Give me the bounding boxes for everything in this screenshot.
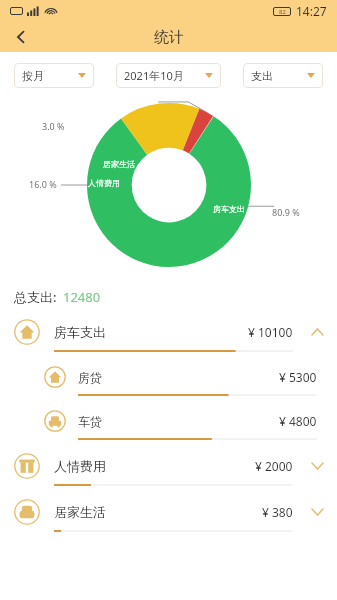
other: Expand (307, 502, 327, 522)
button[interactable]: 居家生活 (0, 494, 337, 540)
staticText: 按月 (22, 69, 44, 83)
staticText: ¥ 5300 (279, 369, 317, 385)
staticText: 车贷 (78, 414, 102, 429)
staticText: ¥ 2000 (255, 458, 293, 474)
button[interactable]: 房车支出 (0, 314, 337, 360)
staticText: 人情费用 (88, 178, 120, 188)
staticText: 居家生活 (103, 159, 135, 169)
staticText: 统计 (154, 28, 184, 47)
other: Collapse (307, 322, 327, 342)
staticText: 人情费用 (54, 458, 106, 474)
staticText: 3.0 % (42, 120, 65, 132)
staticText: 16.0 % (29, 178, 57, 190)
button[interactable]: 2021年10月 (116, 63, 221, 88)
button[interactable]: 车贷 (0, 404, 337, 448)
staticText: 房车支出 (54, 324, 106, 340)
button[interactable]: 按月 (14, 63, 94, 88)
staticText: 80.9 % (272, 206, 300, 218)
button[interactable]: 人情费用 (0, 448, 337, 494)
staticText: 支出 (251, 69, 273, 83)
button[interactable]: Back (6, 22, 36, 52)
staticText: ¥ 4800 (279, 413, 317, 429)
staticText: 居家生活 (54, 504, 106, 520)
staticText: 房贷 (78, 370, 102, 385)
staticText: 总支出: (14, 288, 57, 306)
staticText: 房车支出 (213, 204, 245, 214)
staticText: 82 (279, 8, 286, 16)
button[interactable]: 房贷 (0, 360, 337, 404)
button[interactable]: 支出 (243, 63, 323, 88)
staticText: 12480 (63, 288, 101, 306)
staticText: 2021年10月 (124, 68, 184, 83)
staticText: 14:27 (296, 3, 327, 19)
staticText: ¥ 10100 (248, 324, 293, 340)
staticText: ¥ 380 (262, 504, 293, 520)
other: Expand (307, 456, 327, 476)
